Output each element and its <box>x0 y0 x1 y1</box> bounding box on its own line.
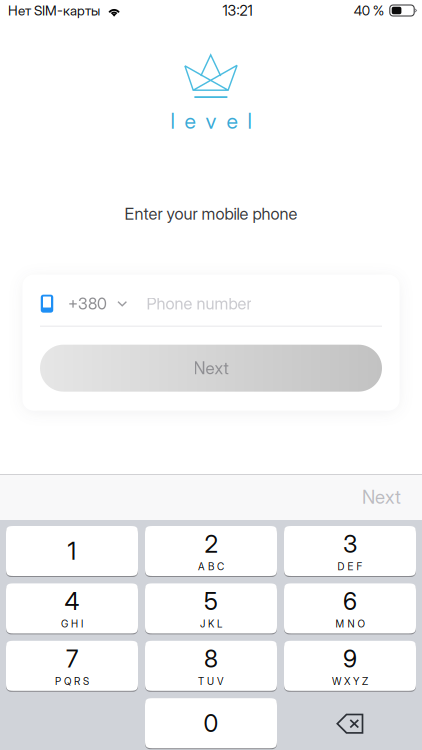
staticText: 0 <box>203 709 218 738</box>
button[interactable]: 1 <box>6 526 138 577</box>
button[interactable]: +380 <box>40 282 382 326</box>
staticText: 6 <box>343 587 357 616</box>
staticText: A B C <box>198 560 224 573</box>
staticText: 2 <box>204 529 217 558</box>
button[interactable]: 0 <box>145 698 277 749</box>
staticText: 40 % <box>354 2 384 19</box>
staticText: 4 <box>64 587 79 616</box>
staticText: G H I <box>61 618 83 630</box>
button[interactable]: Next <box>40 345 382 392</box>
staticText: Enter your mobile phone <box>124 204 297 224</box>
staticText: P Q R S <box>55 675 89 687</box>
staticText: 9 <box>343 644 357 673</box>
button[interactable]: 9 <box>284 641 416 692</box>
button[interactable]: Next <box>362 474 422 520</box>
staticText: M N O <box>335 618 364 630</box>
staticText: 8 <box>204 644 218 673</box>
staticText: W X Y Z <box>332 675 368 687</box>
staticText: T U V <box>198 675 224 687</box>
staticText: Нет SIM-карты <box>8 2 100 19</box>
staticText: 5 <box>204 587 218 616</box>
staticText: Next <box>362 486 401 508</box>
button[interactable]: 8 <box>145 641 277 692</box>
button[interactable]: 6 <box>284 583 416 634</box>
button[interactable]: 3 <box>284 526 416 577</box>
staticText: 1 <box>67 536 76 565</box>
button[interactable]: 2 <box>145 526 277 577</box>
staticText: +380 <box>68 294 107 313</box>
staticText: Phone number <box>146 294 251 313</box>
staticText: 13:21 <box>222 2 252 19</box>
staticText: 7 <box>66 644 78 673</box>
staticText: D E F <box>337 560 362 573</box>
button[interactable]: 4 <box>6 583 138 634</box>
staticText: l e v e l <box>170 108 251 134</box>
staticText: 3 <box>343 529 357 558</box>
button[interactable]: 5 <box>145 583 277 634</box>
button[interactable]: 7 <box>6 641 138 692</box>
staticText: J K L <box>200 618 222 630</box>
button[interactable]: Delete <box>284 699 416 749</box>
staticText: Next <box>193 358 228 378</box>
